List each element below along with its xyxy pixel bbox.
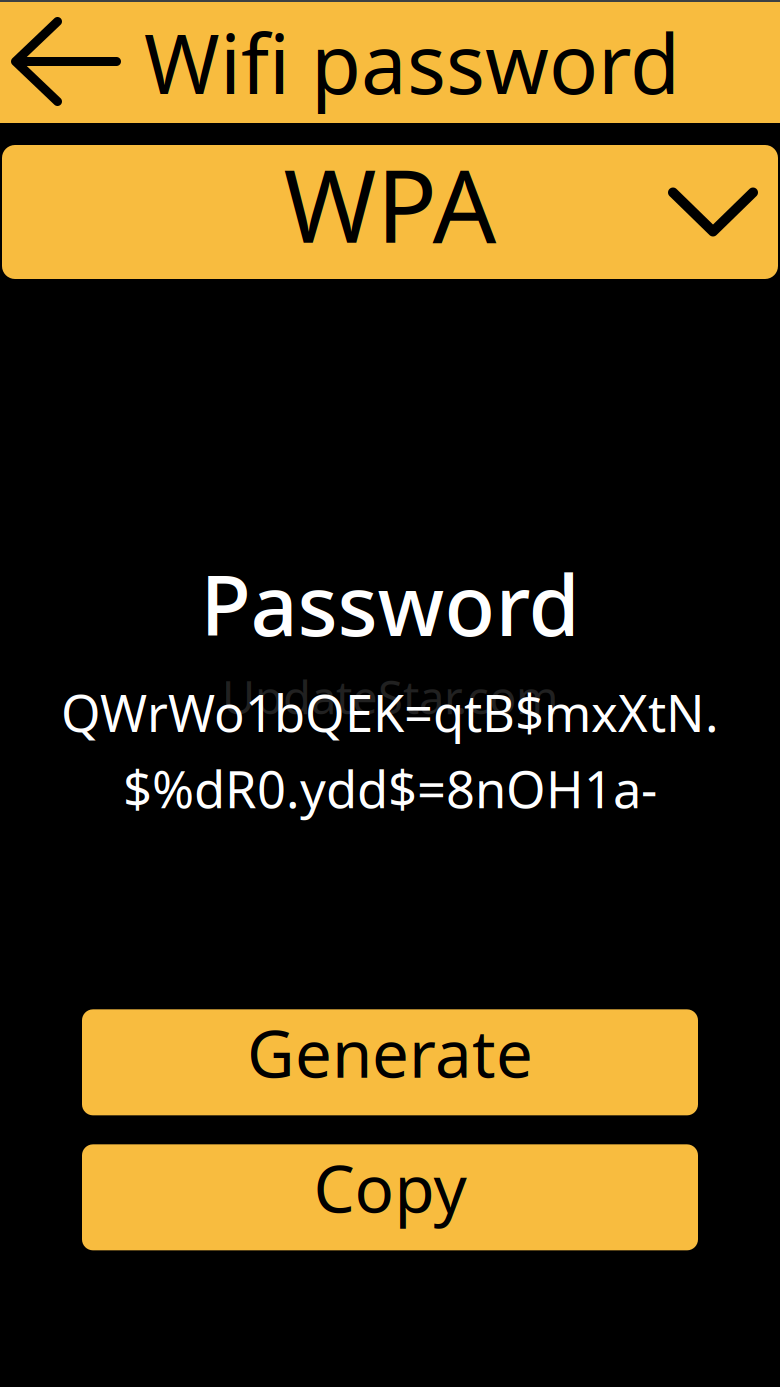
staticText: UpdateStar.com <box>222 667 558 727</box>
button[interactable]: WPA <box>2 145 778 279</box>
staticText: WPA <box>283 138 496 270</box>
staticText: Generate <box>247 1009 533 1096</box>
button[interactable]: Generate <box>82 1009 698 1115</box>
staticText: Copy <box>313 1144 466 1231</box>
button[interactable]: Back <box>0 20 121 102</box>
staticText: Wifi password <box>144 8 680 116</box>
button[interactable]: Copy <box>82 1144 698 1250</box>
staticText: QWrWo1bQEK=qtB$mxXtN. <box>61 679 719 746</box>
staticText: Password <box>200 549 579 659</box>
staticText: $%dR0.ydd$=8nOH1a- <box>123 755 657 822</box>
